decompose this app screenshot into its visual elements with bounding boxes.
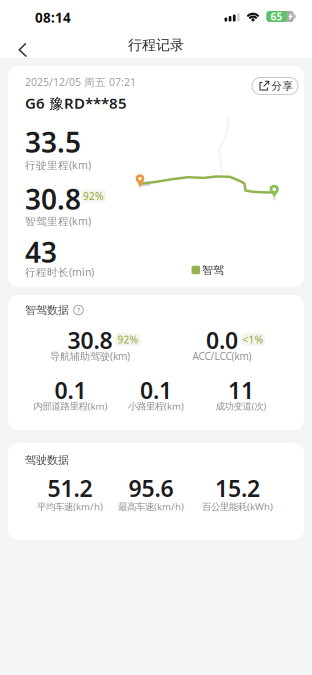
button[interactable]: 智驾数据说明 (71, 303, 85, 317)
staticText: 95.6 (128, 472, 173, 504)
staticText: 92% (117, 333, 138, 346)
staticText: 内部道路里程(km) (33, 399, 107, 412)
staticText: 行驶里程(km) (25, 158, 91, 172)
button[interactable]: 返回 (8, 35, 38, 65)
staticText: ? (77, 305, 80, 315)
staticText: 0.0 (206, 324, 238, 356)
staticText: 小路里程(km) (128, 399, 184, 412)
staticText: 2025/12/05 周五 07:21 (25, 75, 136, 89)
staticText: 分享 (271, 79, 293, 93)
staticText: 行程记录 (128, 36, 184, 54)
staticText: 最高车速(km/h) (118, 500, 184, 513)
staticText: 0.1 (140, 374, 172, 406)
staticText: 15.2 (215, 472, 260, 504)
staticText: 65 (270, 10, 282, 23)
staticText: 30.8 (67, 324, 112, 356)
staticText: 51.2 (47, 472, 92, 504)
staticText: 智驾 (202, 263, 224, 277)
staticText: 智驾里程(km) (25, 214, 91, 228)
staticText: 30.8 (25, 180, 81, 218)
staticText: 43 (25, 233, 57, 271)
staticText: ACC/LCC(km) (192, 349, 251, 363)
staticText: <1% (242, 333, 263, 346)
staticText: 0.1 (54, 374, 86, 406)
button[interactable]: 分享 (248, 74, 302, 98)
staticText: 11 (228, 374, 254, 406)
staticText: 08:14 (35, 8, 71, 27)
staticText: 平均车速(km/h) (37, 500, 103, 513)
staticText: 33.5 (25, 123, 81, 161)
staticText: 导航辅助驾驶(km) (50, 349, 130, 363)
staticText: 92% (83, 189, 104, 203)
staticText: 行程时长(min) (25, 265, 94, 279)
staticText: G6 豫RD***85 (25, 93, 127, 113)
staticText: 百公里能耗(kWh) (202, 500, 273, 513)
staticText: 智驾数据 (25, 303, 69, 317)
staticText: 成功变道(次) (215, 399, 266, 412)
staticText: 驾驶数据 (25, 453, 69, 467)
